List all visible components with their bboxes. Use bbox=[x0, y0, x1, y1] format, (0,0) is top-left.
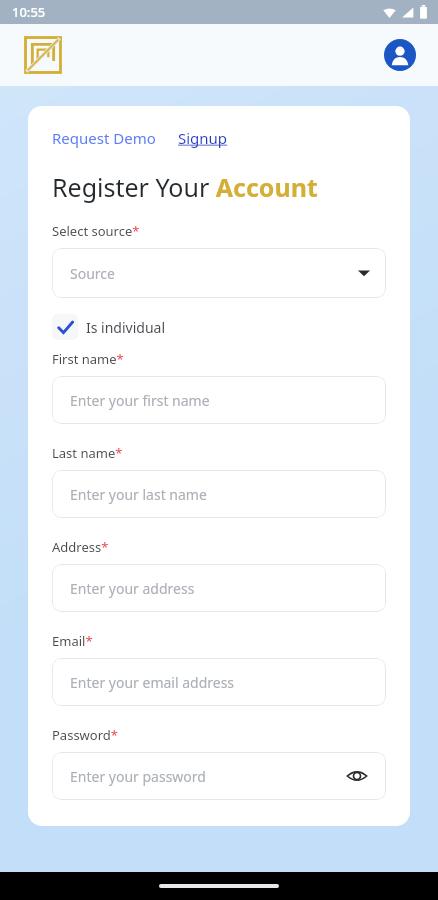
staticText: Email* bbox=[52, 632, 93, 650]
staticText: Register Your Account bbox=[52, 170, 318, 204]
button[interactable]: Enter your password bbox=[52, 752, 386, 800]
button[interactable]: Is individual bbox=[52, 312, 166, 342]
button[interactable]: Show password bbox=[346, 765, 368, 787]
staticText: 10:55 bbox=[12, 3, 46, 21]
button[interactable]: Enter your email address bbox=[52, 658, 386, 706]
staticText: Enter your password bbox=[70, 767, 346, 786]
button[interactable]: Enter your first name bbox=[52, 376, 386, 424]
staticText: Enter your email address bbox=[70, 673, 368, 692]
button[interactable]: Signup bbox=[178, 128, 228, 148]
button[interactable]: Enter your address bbox=[52, 564, 386, 612]
button[interactable]: Enter your last name bbox=[52, 470, 386, 518]
button[interactable]: Account bbox=[384, 39, 416, 71]
staticText: Password* bbox=[52, 726, 118, 744]
staticText: Is individual bbox=[86, 318, 166, 337]
staticText: Request Demo bbox=[52, 128, 156, 148]
staticText: Enter your last name bbox=[70, 485, 368, 504]
staticText: Enter your address bbox=[70, 579, 368, 598]
staticText: Source bbox=[70, 264, 358, 283]
button[interactable]: Company logo bbox=[24, 36, 62, 74]
staticText: Address* bbox=[52, 538, 109, 556]
button[interactable]: Source bbox=[52, 248, 386, 298]
staticText: Last name* bbox=[52, 444, 123, 462]
button[interactable]: Request Demo bbox=[52, 128, 156, 148]
staticText: First name* bbox=[52, 350, 124, 368]
staticText: Signup bbox=[178, 128, 228, 148]
staticText: Enter your first name bbox=[70, 391, 368, 410]
staticText: Select source* bbox=[52, 222, 140, 240]
